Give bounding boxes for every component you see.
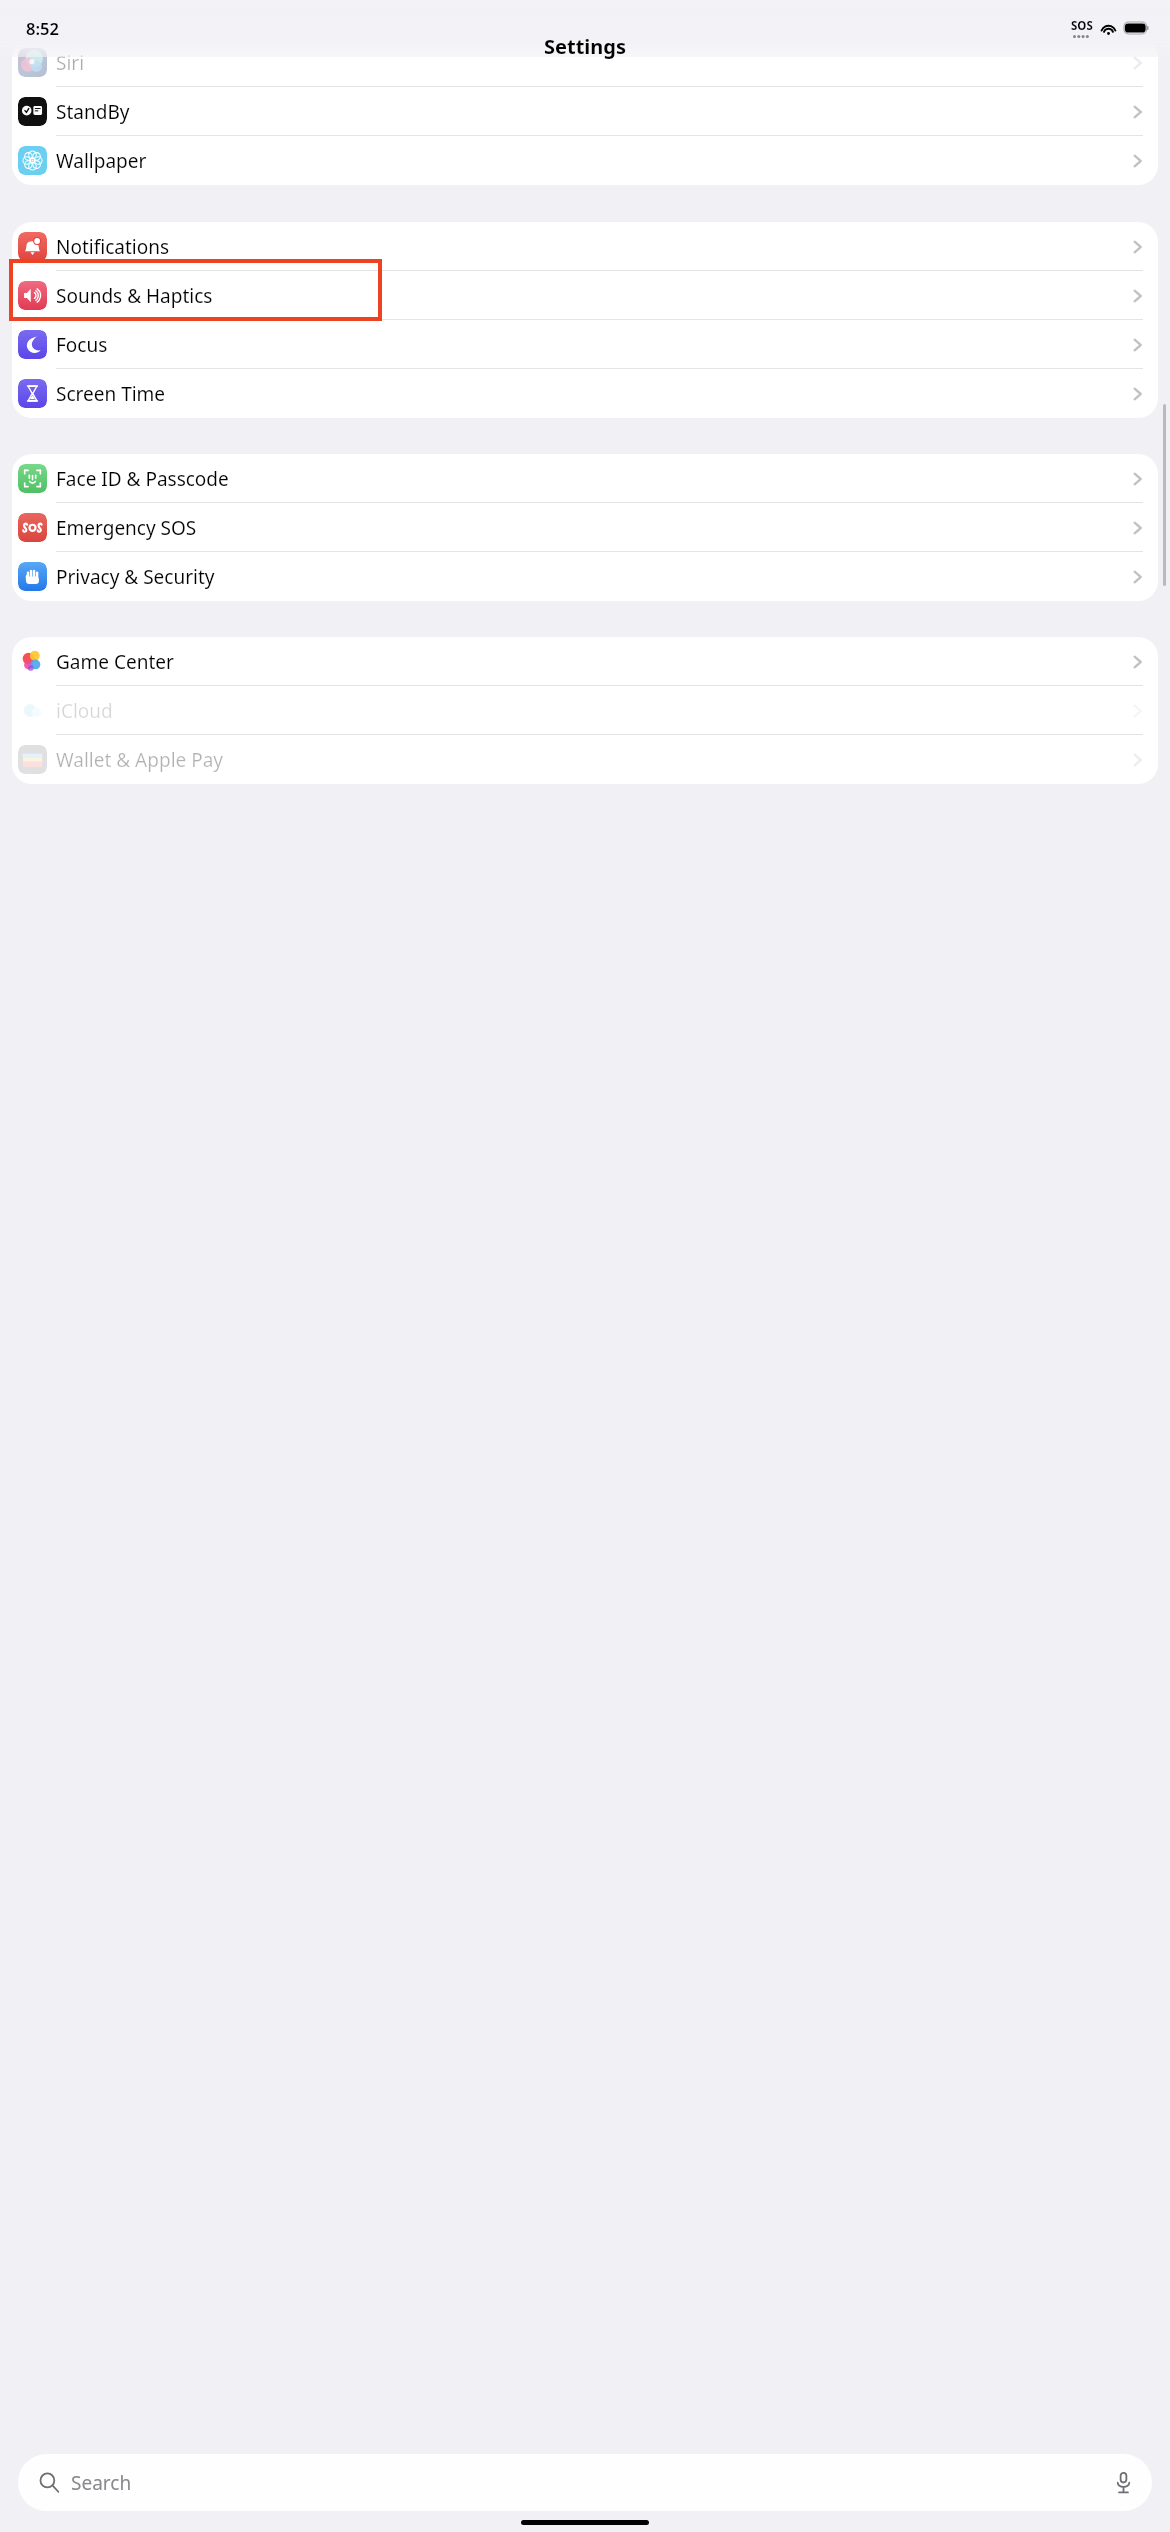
button[interactable]: Sounds & Haptics	[12, 271, 1158, 320]
staticText: Face ID & Passcode	[56, 466, 229, 492]
staticText: Wallet & Apple Pay	[56, 747, 224, 773]
staticText: Wallpaper	[56, 148, 147, 174]
other: Voice search	[1115, 2471, 1132, 2494]
staticText: Siri	[56, 50, 85, 76]
staticText: Game Center	[56, 649, 174, 675]
button[interactable]: Screen Time	[12, 369, 1158, 418]
staticText: StandBy	[56, 99, 130, 125]
staticText: Emergency SOS	[56, 515, 197, 541]
staticText: Sounds & Haptics	[56, 283, 213, 309]
button[interactable]: Siri	[12, 38, 1158, 87]
button[interactable]: Emergency SOS	[12, 503, 1158, 552]
button[interactable]: Wallet & Apple Pay	[12, 735, 1158, 784]
staticText: Privacy & Security	[56, 564, 215, 590]
staticText: SOS	[1071, 18, 1093, 34]
staticText: Search	[71, 2470, 132, 2496]
button[interactable]: Face ID & Passcode	[12, 454, 1158, 503]
button[interactable]: Wallpaper	[12, 136, 1158, 185]
button[interactable]: Notifications	[12, 222, 1158, 271]
button[interactable]: Focus	[12, 320, 1158, 369]
staticText: Screen Time	[56, 381, 166, 407]
button[interactable]: Privacy & Security	[12, 552, 1158, 601]
button[interactable]: iCloud	[12, 686, 1158, 735]
other: Search	[39, 2472, 60, 2493]
staticText: iCloud	[56, 698, 113, 724]
button[interactable]: StandBy	[12, 87, 1158, 136]
staticText: Notifications	[56, 234, 170, 260]
staticText: Settings	[544, 33, 626, 60]
staticText: 8:52	[26, 17, 59, 39]
button[interactable]: Game Center	[12, 637, 1158, 686]
staticText: Focus	[56, 332, 108, 358]
button[interactable]: Search	[18, 2454, 1152, 2511]
